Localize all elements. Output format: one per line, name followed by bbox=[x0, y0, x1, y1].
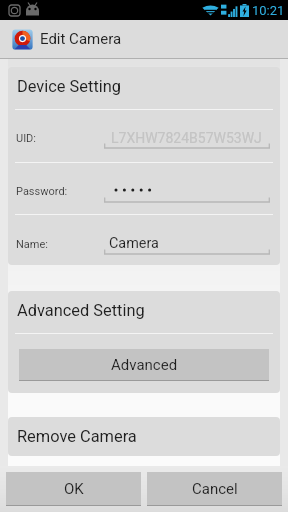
staticText: Edit Camera bbox=[40, 30, 122, 48]
button[interactable]: Remove Camera bbox=[8, 417, 280, 456]
staticText: Advanced bbox=[111, 356, 178, 374]
staticText: Remove Camera bbox=[17, 427, 137, 446]
staticText: L7XHW7824B57W53WJ bbox=[111, 130, 262, 146]
staticText: Device Setting bbox=[17, 77, 121, 96]
staticText: OK bbox=[64, 480, 84, 498]
button[interactable]: Advanced bbox=[19, 349, 269, 380]
staticText: Cancel bbox=[192, 480, 238, 498]
staticText: Advanced Setting bbox=[17, 301, 145, 320]
button[interactable]: Cancel bbox=[147, 472, 282, 505]
staticText: 10:21 bbox=[252, 3, 285, 18]
staticText: UID: bbox=[16, 132, 37, 145]
button[interactable]: OK bbox=[6, 472, 141, 505]
staticText: Camera bbox=[109, 235, 159, 252]
staticText: Password: bbox=[16, 185, 68, 198]
staticText: Name: bbox=[16, 238, 48, 251]
